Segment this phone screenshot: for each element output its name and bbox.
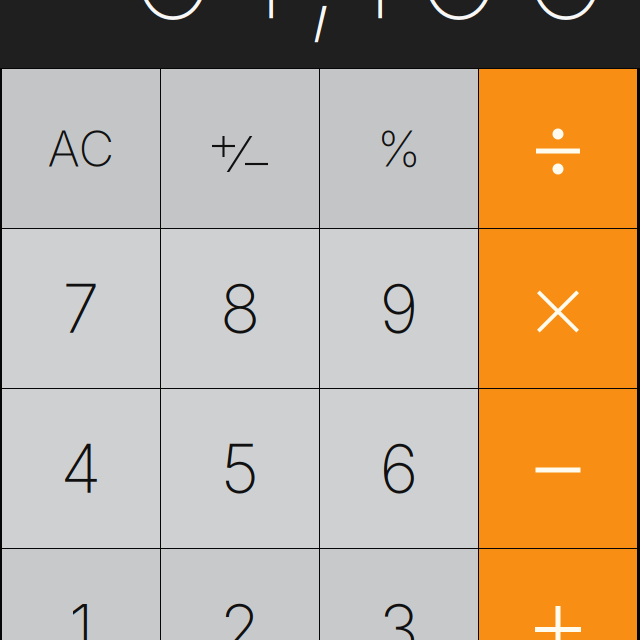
button[interactable]: AC (2, 69, 160, 228)
button[interactable]: 6 (320, 389, 478, 548)
staticText: AC (47, 119, 114, 178)
button[interactable]: 3 (320, 549, 478, 640)
staticText: 5 (220, 428, 259, 509)
button[interactable]: 7 (2, 229, 160, 388)
button[interactable]: Divide (479, 69, 637, 228)
button[interactable]: 8 (161, 229, 319, 388)
staticText: 4 (60, 428, 101, 509)
button[interactable]: Multiply (479, 229, 637, 388)
staticText: 9 (379, 268, 418, 349)
button[interactable]: 1 (2, 549, 160, 640)
staticText: 7 (62, 268, 99, 349)
button[interactable]: 4 (2, 389, 160, 548)
button[interactable]: % (320, 69, 478, 228)
staticText: 6 (379, 428, 418, 509)
button[interactable]: 5 (161, 389, 319, 548)
button[interactable]: Plus minus (161, 69, 319, 228)
button[interactable]: 2 (161, 549, 319, 640)
staticText: 3 (379, 588, 419, 640)
staticText: % (377, 119, 421, 178)
button[interactable]: Subtract (479, 389, 637, 548)
staticText: 2 (219, 588, 260, 640)
staticText: 8 (220, 268, 260, 349)
staticText: 1 (68, 588, 93, 640)
staticText: 01,100 (124, 0, 615, 58)
button[interactable]: Add (479, 549, 637, 640)
button[interactable]: 9 (320, 229, 478, 388)
